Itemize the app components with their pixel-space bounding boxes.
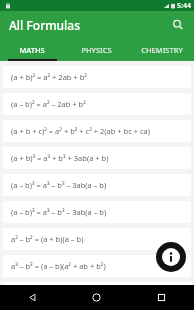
button[interactable]: Search [166,13,190,37]
button[interactable]: (a – b)² = a² – 2ab + b² [3,93,191,115]
button[interactable]: Information [156,242,186,272]
staticText: All Formulas [9,17,81,33]
staticText: PHYSICS [81,45,112,55]
button[interactable]: (a + b + c)² = a² + b² + c² + 2(ab + bc … [3,120,191,142]
staticText: MATHS [19,45,45,55]
button[interactable]: (a + b)² = a² + 2ab + b² [3,66,191,88]
staticText: CHEMISTRY [141,45,183,55]
staticText: (a + b)² = a² + 2ab + b² [11,72,87,82]
button[interactable]: Home [64,285,129,310]
staticText: (a – b)³ = a³ – b³ – 3ab(a – b) [11,207,107,217]
staticText: (a + b)³ = a³ + b³ + 3ab(a + b) [11,153,109,163]
button[interactable]: a³ + b³ = (a + b)(a² – ab + b²) [3,282,191,304]
button[interactable]: (a + b)³ = a³ + b³ + 3ab(a + b) [3,147,191,169]
button[interactable]: (a – b)³ = a³ – b³ – 3ab(a – b) [3,174,191,196]
staticText: a³ + b³ = (a + b)(a² – ab + b²) [11,288,107,298]
staticText: a² – b² = (a + b)(a – b) [11,234,84,244]
staticText: (a + b + c)² = a² + b² + c² + 2(ab + bc … [11,126,150,136]
staticText: (a – b)³ = a³ – b³ – 3ab(a – b) [11,180,107,190]
button[interactable]: Recent apps [129,285,194,310]
button[interactable]: CHEMISTRY [129,39,194,61]
button[interactable]: Back [0,285,64,310]
button[interactable]: MATHS [0,39,64,61]
button[interactable]: PHYSICS [64,39,129,61]
staticText: (a – b)² = a² – 2ab + b² [11,99,86,109]
staticText: a³ – b³ = (a – b)(a² + ab + b²) [11,261,106,271]
button[interactable]: (a – b)³ = a³ – b³ – 3ab(a – b) [3,201,191,223]
button[interactable]: a³ – b³ = (a – b)(a² + ab + b²) [3,255,191,277]
staticText: 5:44 [177,1,191,11]
button[interactable]: a² – b² = (a + b)(a – b) [3,228,191,250]
